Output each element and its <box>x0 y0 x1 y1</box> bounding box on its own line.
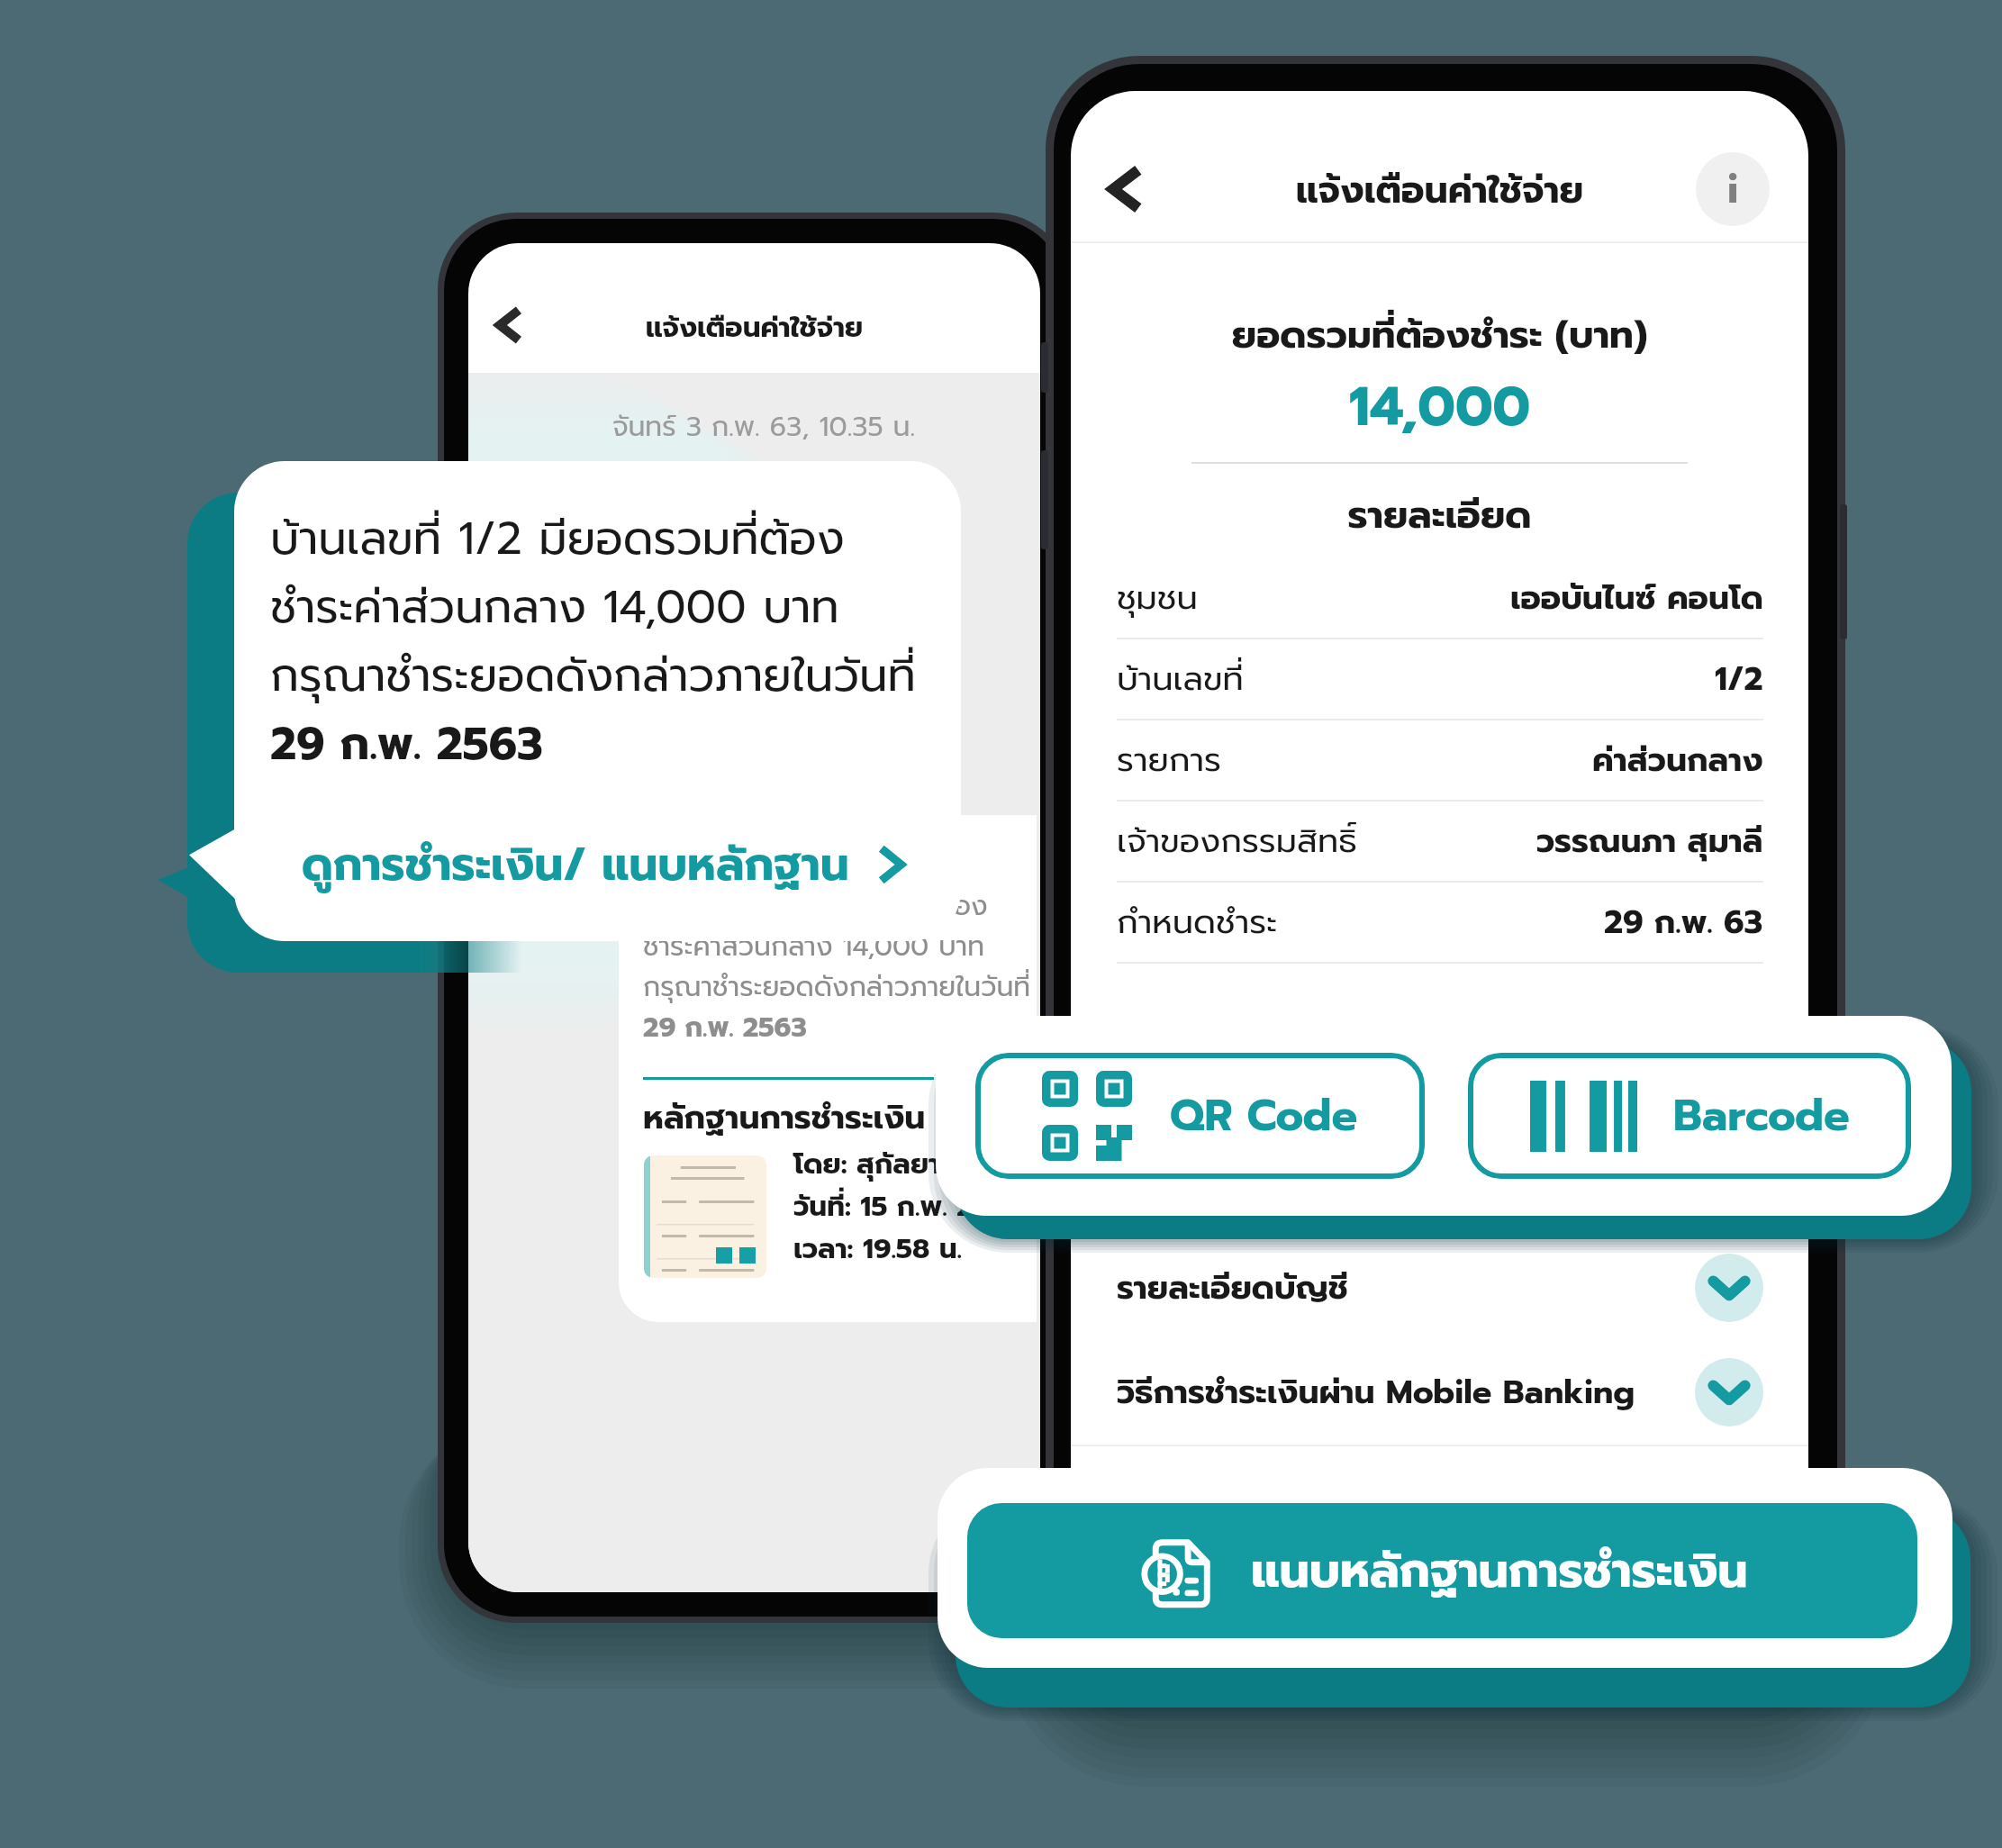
button[interactable]: Payment slip thumbnail <box>644 1155 766 1278</box>
staticText: วรรณนภา สุมาลี <box>1536 817 1763 865</box>
button[interactable]: รายละเอียดบัญชี <box>1117 1238 1763 1337</box>
staticText: กำหนดชำระ <box>1117 897 1278 947</box>
staticText: i <box>1727 159 1739 220</box>
staticText: 29 ก.พ. 63 <box>1604 898 1763 947</box>
button[interactable]: เจ้าของกรรมสิทธิ์ <box>1117 802 1763 881</box>
button[interactable]: บ้านเลขที่ 1/2 มียอดรวมที่ต้อง <box>234 461 961 941</box>
button[interactable]: รายการ <box>1117 720 1763 800</box>
staticText: โดย: สุกัลยา <box>793 1143 940 1185</box>
staticText: รายละเอียด <box>1071 486 1808 544</box>
staticText: บ้านเลขที่ 1/2 มียอดรวมที่ต้อง <box>270 504 845 573</box>
staticText: ค่าส่วนกลาง <box>1592 736 1763 784</box>
staticText: แจ้งเตือนค่าใช้จ่าย <box>468 306 1040 349</box>
staticText: ชุมชน <box>1117 573 1198 623</box>
staticText: Barcode <box>1673 1083 1850 1149</box>
staticText: จันทร์ 3 ก.พ. 63, 10.35 น. <box>468 406 915 447</box>
staticText: ดูการชำระเงิน/ แนบหลักฐาน <box>302 830 849 899</box>
staticText: เวลา: 19.58 น. <box>793 1227 963 1270</box>
staticText: ชำระค่าส่วนกลาง 14,000 บาท <box>643 926 985 966</box>
button[interactable]: บ้านเลขที่ <box>1117 639 1763 719</box>
staticText: ชำระค่าส่วนกลาง 14,000 บาท <box>270 573 839 641</box>
button[interactable]: กำหนดชำระ <box>1117 883 1763 962</box>
button[interactable]: QR Code <box>975 1053 1425 1179</box>
staticText: เจ้าของกรรมสิทธิ์ <box>1117 816 1357 866</box>
staticText: หลักฐานการชำระเงิน <box>643 1093 926 1142</box>
button[interactable]: ชุมชน <box>1117 558 1763 638</box>
button[interactable]: Back <box>1087 152 1161 226</box>
staticText: ยอดรวมที่ต้องชำระ (บาท) <box>1071 306 1808 364</box>
staticText: QR Code <box>1170 1083 1358 1149</box>
button[interactable]: บ้านเลขที่ 1/2 มียอดรวมที่ต้อง <box>619 815 1037 1322</box>
button[interactable]: Barcode <box>1468 1053 1911 1179</box>
staticText: แจ้งเตือนค่าใช้จ่าย <box>1071 162 1808 218</box>
button[interactable]: Information <box>1696 152 1770 226</box>
button[interactable]: แนบหลักฐานการชำระเงิน <box>967 1503 1917 1638</box>
staticText: แนบหลักฐานการชำระเงิน <box>1251 1535 1748 1607</box>
staticText: 1/2 <box>1715 655 1763 703</box>
staticText: บ้านเลขที่ <box>1117 654 1244 704</box>
staticText: 29 ก.พ. 2563 <box>643 1007 807 1047</box>
staticText: เออบันไนซ์ คอนโด <box>1510 574 1763 622</box>
staticText: กรุณาชำระยอดดังกล่าวภายในวันที่ <box>270 641 916 710</box>
button[interactable]: Back <box>474 291 542 359</box>
staticText: 29 ก.พ. 2563 <box>270 710 543 778</box>
staticText: รายละเอียดบัญชี <box>1117 1264 1349 1312</box>
staticText: วิธีการชำระเงินผ่าน Mobile Banking <box>1117 1368 1635 1417</box>
button[interactable]: วิธีการชำระเงินผ่าน Mobile Banking <box>1117 1343 1763 1442</box>
staticText: วันที่: 15 ก.พ. 2563 <box>793 1185 1023 1227</box>
staticText: 14,000 <box>1071 367 1808 448</box>
staticText: กรุณาชำระยอดดังกล่าวภายในวันที่ <box>643 966 1031 1007</box>
button[interactable]: ดูการชำระเงิน/ แนบหลักฐาน <box>302 830 912 899</box>
staticText: รายการ <box>1117 735 1221 785</box>
staticText: บ้านเลขที่ 1/2 มียอดรวมที่ต้อง <box>643 885 988 926</box>
